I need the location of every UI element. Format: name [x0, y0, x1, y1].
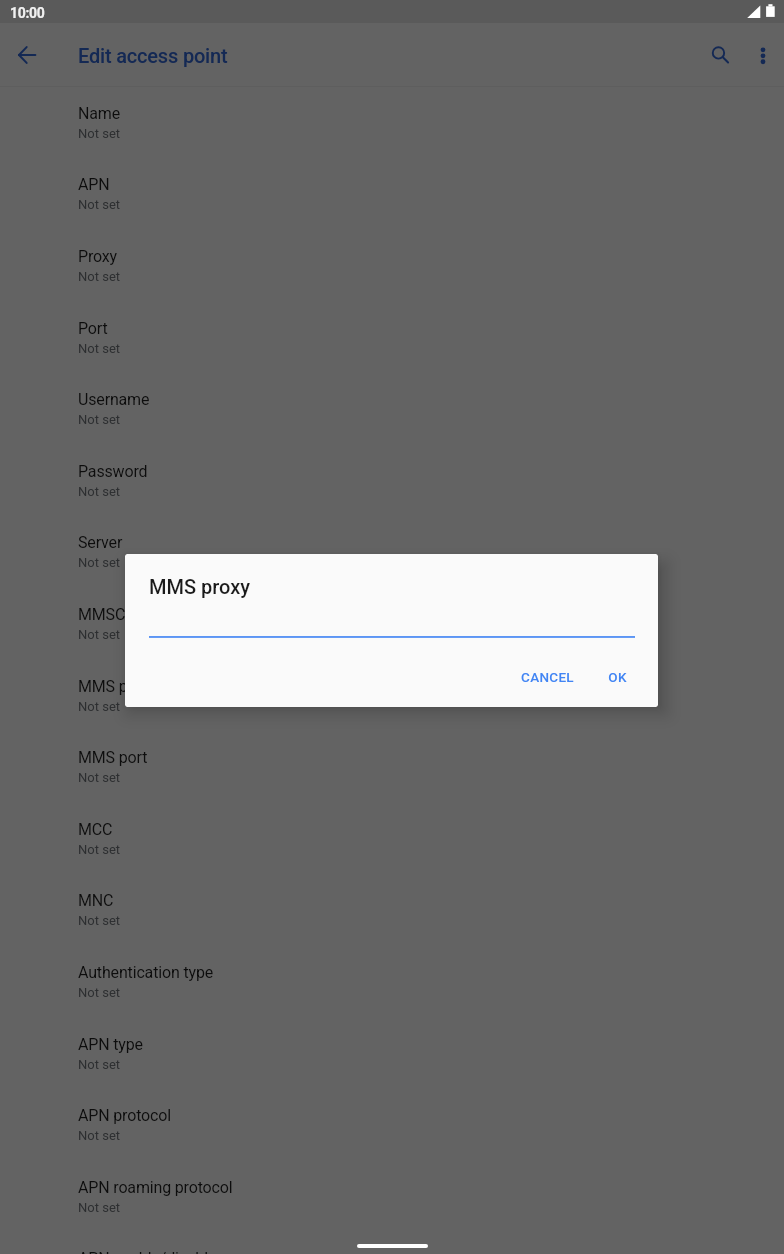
staticText: MMS proxy: [78, 677, 157, 696]
staticText: 10:00: [10, 5, 45, 21]
staticText: Not set: [78, 1057, 121, 1072]
button[interactable]: APN: [0, 157, 784, 229]
staticText: APN enable/disable: [78, 1249, 217, 1254]
button[interactable]: Server: [0, 515, 784, 587]
button[interactable]: Password: [0, 444, 784, 516]
button[interactable]: APN protocol: [0, 1088, 784, 1160]
staticText: Not set: [78, 985, 121, 1000]
staticText: Not set: [78, 699, 121, 714]
staticText: Edit access point: [78, 44, 228, 67]
staticText: MMS port: [78, 748, 148, 767]
staticText: Not set: [78, 842, 121, 857]
button[interactable]: Navigate up: [0, 28, 54, 82]
staticText: Not set: [78, 1200, 121, 1215]
staticText: Not set: [78, 913, 121, 928]
staticText: Not set: [78, 197, 121, 212]
staticText: MNC: [78, 891, 114, 910]
button[interactable]: OK: [591, 662, 644, 692]
button[interactable]: More options: [742, 34, 784, 76]
staticText: Port: [78, 319, 108, 338]
button[interactable]: CANCEL: [504, 662, 591, 692]
staticText: Name: [78, 104, 120, 123]
button[interactable]: Close dialog: [0, 0, 784, 1254]
button[interactable]: MMSC: [0, 587, 784, 659]
button[interactable]: MMS proxy: [0, 659, 784, 731]
staticText: Not set: [78, 484, 121, 499]
staticText: MMS proxy: [149, 575, 251, 598]
staticText: Username: [78, 390, 150, 409]
button[interactable]: Authentication type: [0, 945, 784, 1017]
staticText: APN roaming protocol: [78, 1178, 233, 1197]
staticText: MCC: [78, 820, 113, 839]
staticText: Password: [78, 462, 148, 481]
staticText: Server: [78, 533, 123, 552]
button[interactable]: MCC: [0, 802, 784, 874]
staticText: Not set: [78, 412, 121, 427]
staticText: APN type: [78, 1035, 143, 1054]
staticText: Not set: [78, 341, 121, 356]
staticText: APN: [78, 175, 110, 194]
staticText: Not set: [78, 1128, 121, 1143]
button[interactable]: Username: [0, 372, 784, 444]
staticText: Not set: [78, 770, 121, 785]
button[interactable]: Proxy: [0, 229, 784, 301]
staticText: Not set: [78, 627, 121, 642]
staticText: CANCEL: [521, 669, 574, 685]
button[interactable]: Port: [0, 301, 784, 373]
staticText: Not set: [78, 126, 121, 141]
staticText: Proxy: [78, 247, 118, 266]
button[interactable]: APN type: [0, 1017, 784, 1089]
button[interactable]: Name: [0, 86, 784, 158]
staticText: Not set: [78, 269, 121, 284]
button[interactable]: Search: [694, 29, 746, 81]
staticText: Not set: [78, 555, 121, 570]
button[interactable]: MMS port: [0, 730, 784, 802]
staticText: OK: [608, 669, 627, 685]
staticText: MMSC: [78, 605, 126, 624]
staticText: Authentication type: [78, 963, 214, 982]
button[interactable]: MNC: [0, 873, 784, 945]
button[interactable]: APN enable/disable: [0, 1231, 784, 1254]
button[interactable]: APN roaming protocol: [0, 1160, 784, 1232]
other: Home: [357, 1244, 428, 1248]
staticText: APN protocol: [78, 1106, 171, 1125]
